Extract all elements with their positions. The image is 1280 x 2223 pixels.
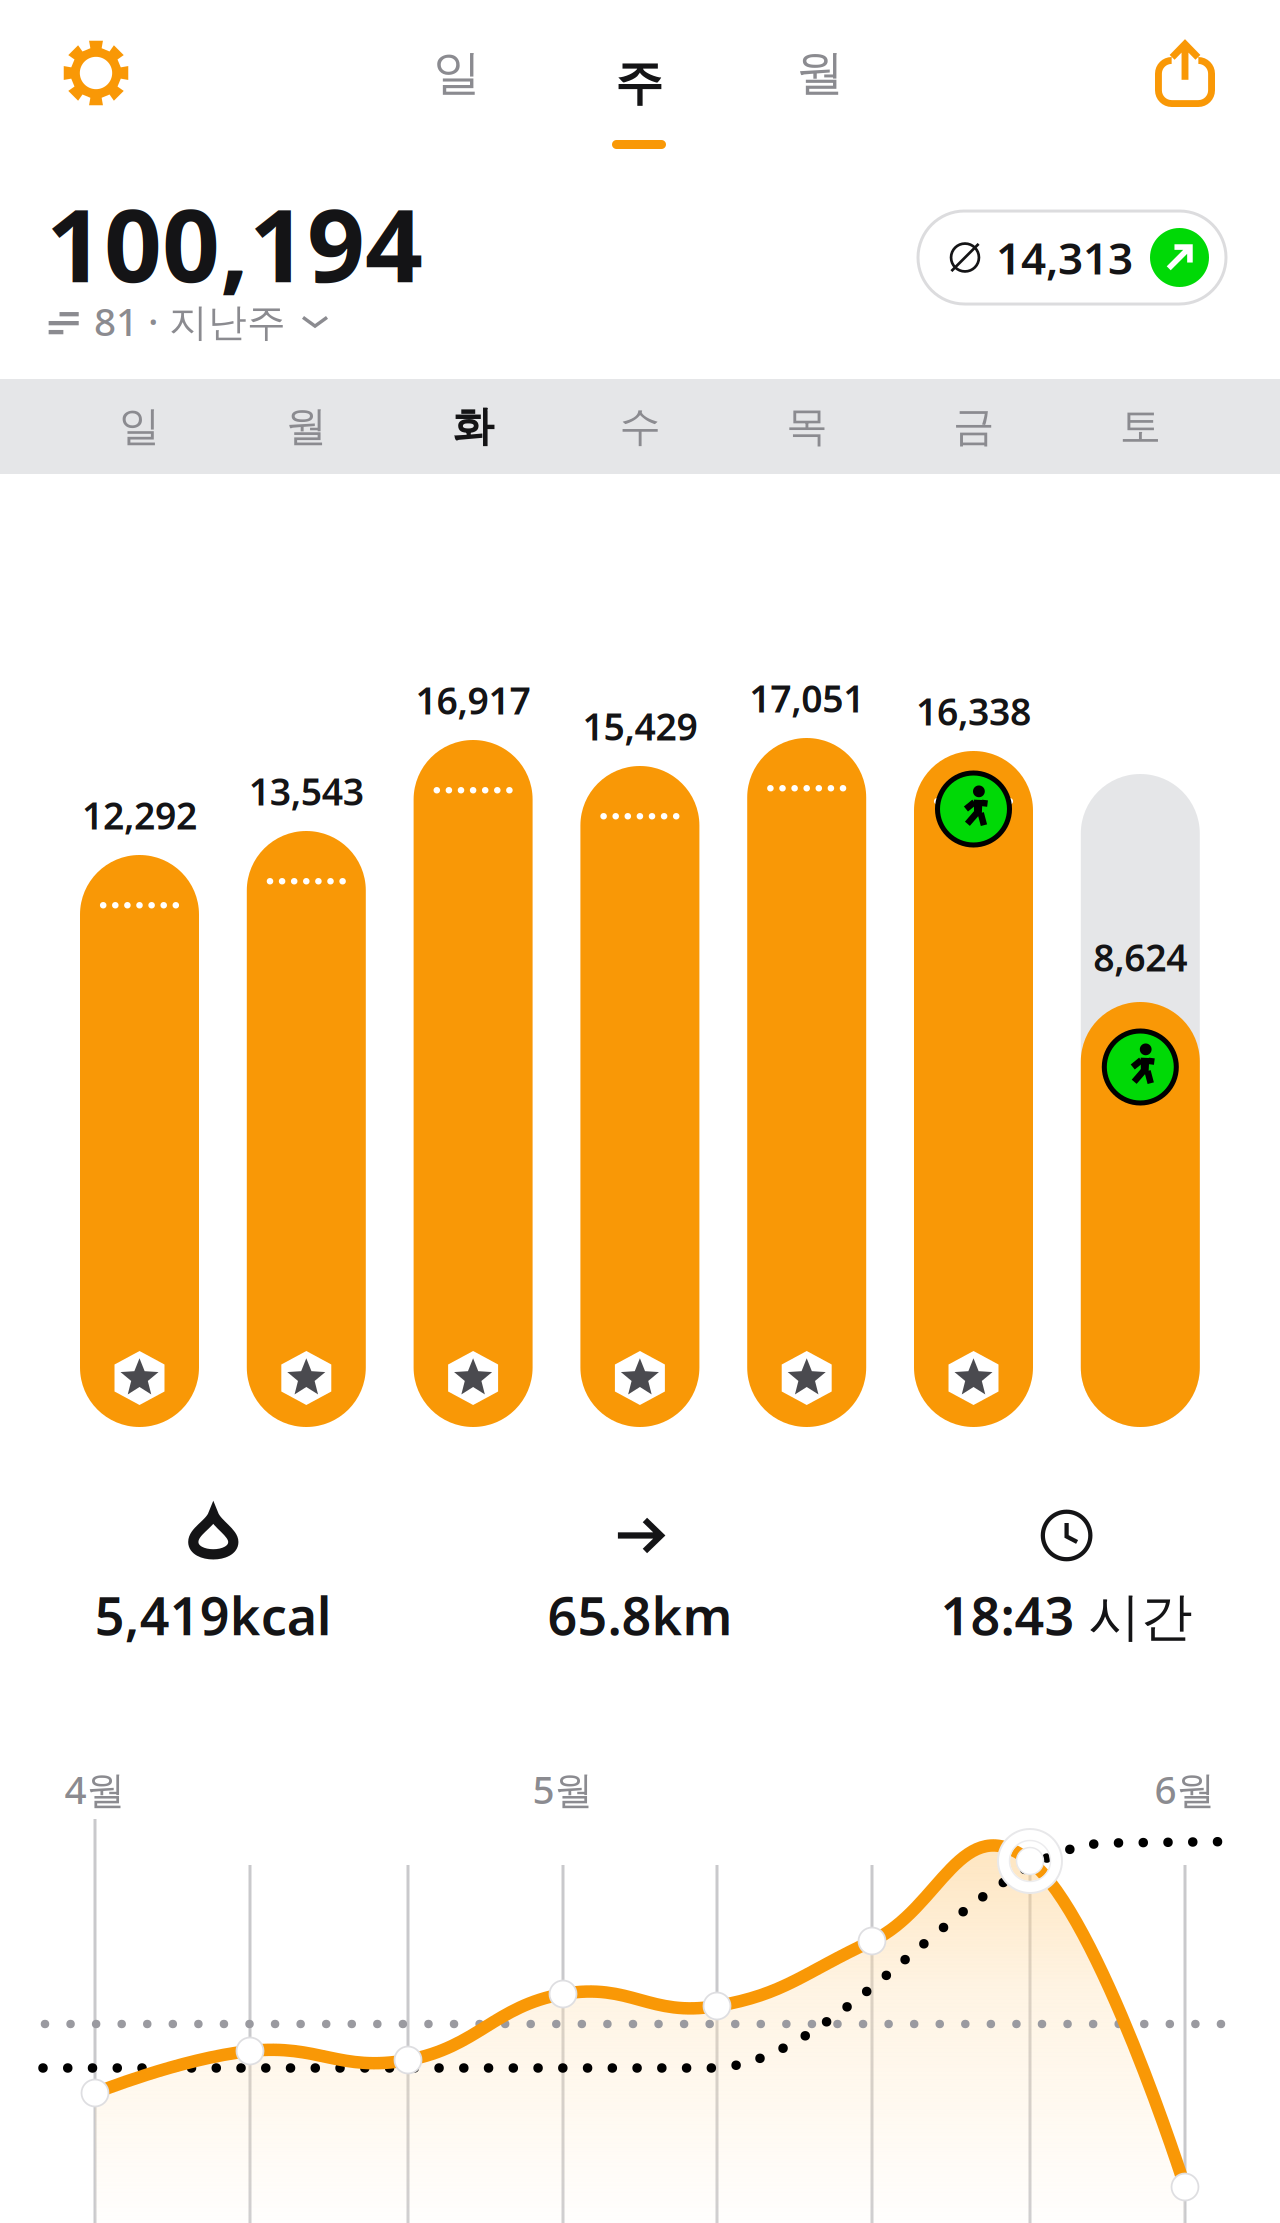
staticText: 토 [1120,401,1161,452]
button[interactable]: Settings [36,13,156,133]
staticText: 15,429 [582,701,697,751]
staticText: 월 [286,401,327,452]
staticText: 5,419kcal [95,1580,332,1650]
staticText: 65.8km [547,1580,732,1650]
staticText: 12,292 [82,790,197,840]
staticText: 17,051 [749,673,864,723]
staticText: 월 [796,43,844,102]
staticText: 100,194 [46,176,423,310]
staticText: 일 [119,401,160,452]
button[interactable]: 월 [750,13,890,133]
staticText: 5월 [532,1763,593,1815]
staticText: 4월 [64,1763,125,1815]
staticText: 6월 [1154,1763,1215,1815]
staticText: 화 [453,401,494,452]
staticText: 13,543 [249,766,364,816]
button[interactable]: 14,313 [918,211,1226,304]
staticText: 18:43 시간 [941,1580,1193,1650]
staticText: 주 [615,53,663,112]
staticText: 16,917 [416,675,531,725]
button[interactable]: 81 · 지난주 [48,296,348,346]
staticText: 목 [786,401,827,452]
staticText: 81 · 지난주 [94,295,286,347]
staticText: 일 [433,43,481,102]
staticText: 수 [619,401,660,452]
button[interactable]: 주 [569,13,709,153]
staticText: 14,313 [996,228,1133,287]
button[interactable]: Share [1125,13,1245,133]
staticText: 16,338 [916,686,1031,736]
button[interactable]: 일 [387,13,527,133]
staticText: 8,624 [1093,932,1187,982]
staticText: 금 [953,401,994,452]
